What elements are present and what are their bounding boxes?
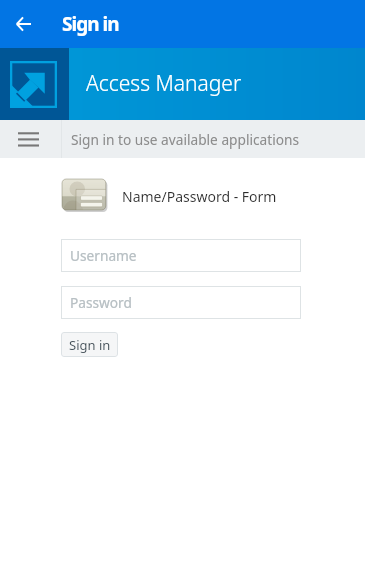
staticText: Access Manager — [86, 69, 242, 98]
staticText: Sign in — [69, 336, 111, 354]
button[interactable]: Back — [3, 4, 43, 44]
button[interactable]: Menu — [0, 120, 61, 158]
button[interactable]: Username — [61, 239, 301, 272]
staticText: Sign in — [62, 11, 119, 37]
staticText: Password — [70, 293, 132, 312]
button[interactable]: Password — [61, 286, 301, 319]
button[interactable]: Sign in — [61, 332, 118, 357]
staticText: Username — [70, 246, 137, 265]
staticText: Name/Password - Form — [122, 187, 277, 206]
staticText: Sign in to use available applications — [71, 130, 299, 149]
